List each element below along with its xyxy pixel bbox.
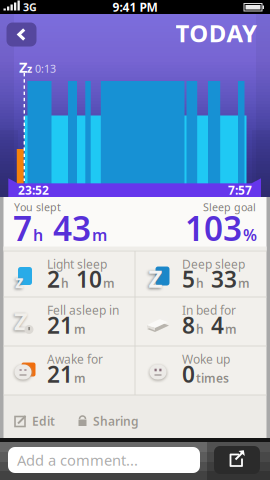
button[interactable]: Add a comment... [8,447,200,473]
staticText: 43 [44,206,91,250]
staticText: 10 [70,264,102,294]
staticText: Z [19,57,27,77]
staticText: h [196,275,204,291]
staticText: 7 [13,206,32,250]
button[interactable]: Share [214,446,260,474]
staticText: 4 [205,310,224,340]
staticText: 3G [23,0,37,14]
staticText: 7:57 [228,182,252,198]
staticText: Sharing [93,413,139,429]
staticText: 33 [205,264,237,294]
staticText: 9:41 PM [112,0,157,15]
staticText: h [196,321,204,337]
staticText: h [33,224,43,245]
staticText: times [196,370,229,386]
button[interactable]: Sharing [77,408,143,434]
staticText: m [103,275,115,291]
staticText: Light sleep [47,256,107,272]
staticText: Awake for [47,351,103,367]
staticText: Fell asleep in [47,302,119,318]
staticText: 2 [47,264,60,294]
staticText: Add a comment... [17,450,138,470]
staticText: h [61,275,69,291]
staticText: Z [14,305,28,337]
staticText: 103 [185,206,242,250]
staticText: 21 [47,359,73,389]
staticText: Deep sleep [182,256,245,272]
staticText: 0 [182,359,195,389]
staticText: m [74,321,86,337]
staticText: 23:52 [18,182,49,198]
staticText: m [225,321,237,337]
staticText: % [243,224,257,245]
staticText: 5 [182,264,195,294]
staticText: In bed for [182,302,236,318]
staticText: 8 [182,310,195,340]
staticText: Z [148,263,162,294]
staticText: m [74,370,86,386]
staticText: You slept [14,200,61,214]
staticText: Woke up [182,351,230,367]
staticText: z [15,270,24,293]
staticText: m [92,224,107,245]
staticText: Edit [32,413,55,429]
button[interactable]: Edit [14,408,66,434]
staticText: 0:13 [32,61,56,76]
staticText: Sleep goal [203,200,256,214]
staticText: TODAY [176,17,257,49]
staticText: 21 [47,310,73,340]
button[interactable]: Back [6,22,36,46]
staticText: z [27,61,32,76]
staticText: m [238,275,250,291]
